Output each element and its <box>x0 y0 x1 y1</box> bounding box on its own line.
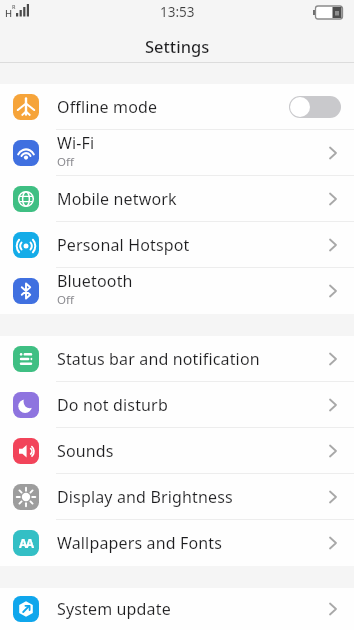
staticText: Offline mode <box>57 96 158 118</box>
button[interactable]: Bluetooth <box>0 268 354 314</box>
staticText: Wi-Fi <box>57 132 95 154</box>
button[interactable]: System update <box>0 588 354 630</box>
staticText: H <box>5 7 13 20</box>
staticText: Display and Brightness <box>57 486 233 508</box>
staticText: AA <box>19 535 33 551</box>
button[interactable]: Wi-Fi <box>0 130 354 176</box>
staticText: R <box>12 3 16 10</box>
button[interactable] <box>289 96 341 118</box>
button[interactable]: AA <box>0 520 354 566</box>
staticText: Off <box>57 154 74 170</box>
staticText: System update <box>57 598 171 620</box>
staticText: Off <box>57 292 74 308</box>
button[interactable]: Do not disturb <box>0 382 354 428</box>
staticText: Personal Hotspot <box>57 234 190 256</box>
button[interactable]: Mobile network <box>0 176 354 222</box>
staticText: Bluetooth <box>57 270 133 292</box>
staticText: 13:53 <box>160 3 195 21</box>
staticText: Mobile network <box>57 188 177 210</box>
staticText: Settings <box>145 35 210 57</box>
button[interactable]: Offline mode <box>0 84 354 130</box>
button[interactable]: Personal Hotspot <box>0 222 354 268</box>
button[interactable]: Sounds <box>0 428 354 474</box>
staticText: Wallpapers and Fonts <box>57 532 223 554</box>
staticText: Do not disturb <box>57 394 168 416</box>
button[interactable]: Display and Brightness <box>0 474 354 520</box>
staticText: Sounds <box>57 440 114 462</box>
button[interactable]: Status bar and notification <box>0 336 354 382</box>
staticText: Status bar and notification <box>57 348 260 370</box>
